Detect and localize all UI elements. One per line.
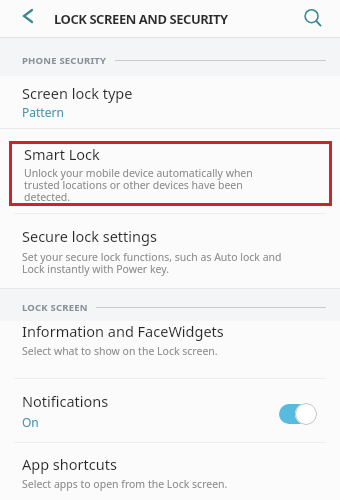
button[interactable]: Screen lock type	[0, 76, 340, 128]
staticText: LOCK SCREEN	[22, 301, 88, 314]
staticText: PHONE SECURITY	[22, 54, 107, 67]
staticText: Select what to show on the Lock screen.	[22, 344, 218, 358]
button[interactable]: Notifications	[0, 379, 340, 442]
staticText: Screen lock type	[22, 83, 133, 103]
button[interactable]: Secure lock settings	[0, 214, 340, 288]
staticText: Notifications	[22, 391, 109, 411]
staticText: On	[22, 414, 39, 430]
button[interactable]	[0, 0, 54, 37]
staticText: Select apps to open from the Lock screen…	[22, 477, 228, 491]
staticText: App shortcuts	[22, 454, 117, 474]
staticText: Pattern	[22, 104, 64, 120]
staticText: Information and FaceWidgets	[22, 321, 224, 341]
button[interactable]	[286, 0, 340, 37]
staticText: Unlock your mobile device automatically …	[24, 166, 253, 204]
button[interactable]: Information and FaceWidgets	[0, 321, 340, 378]
button[interactable]: Smart Lock	[9, 141, 332, 206]
staticText: LOCK SCREEN AND SECURITY	[54, 10, 286, 28]
staticText: Set your secure lock functions, such as …	[22, 250, 282, 276]
button[interactable]: App shortcuts	[0, 443, 340, 500]
staticText: Smart Lock	[24, 144, 100, 164]
staticText: Secure lock settings	[22, 226, 157, 246]
